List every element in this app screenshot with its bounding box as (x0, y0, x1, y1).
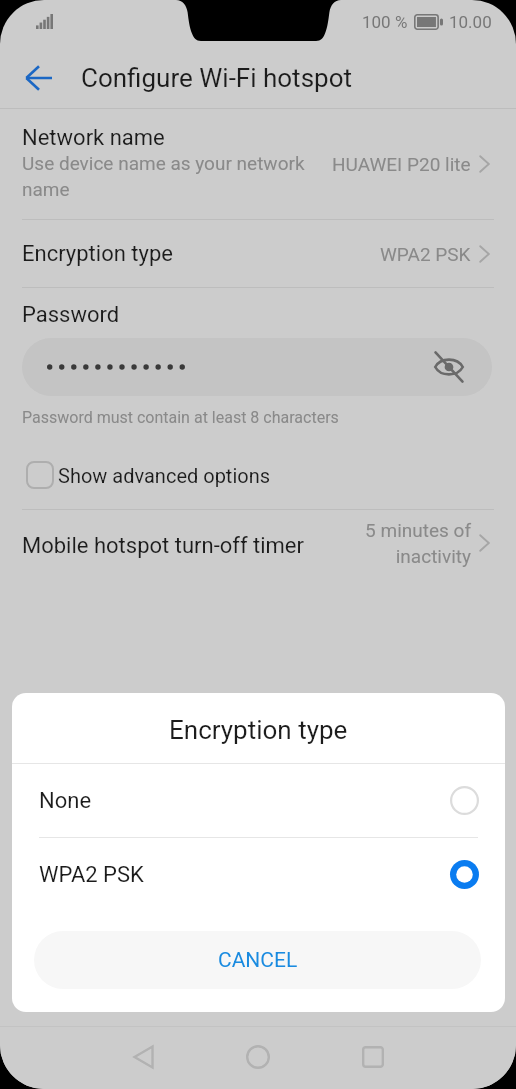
staticText: None (39, 788, 92, 814)
staticText: Show advanced options (58, 464, 271, 487)
button[interactable]: Home (228, 1027, 288, 1087)
staticText: Mobile hotspot turn-off timer (22, 533, 304, 559)
staticText: Use device name as your network name (22, 152, 318, 200)
button[interactable]: Back (113, 1027, 173, 1087)
button[interactable]: Encryption type (0, 220, 516, 287)
staticText: Configure Wi-Fi hotspot (81, 63, 352, 93)
staticText: Password (22, 302, 120, 328)
button[interactable]: Back (9, 48, 69, 108)
staticText: Encryption type (169, 715, 348, 745)
staticText: 10.00 (449, 12, 492, 32)
staticText: 5 minutes of inactivity (351, 519, 471, 567)
button[interactable]: WPA2 PSK (12, 838, 505, 911)
staticText: Password must contain at least 8 charact… (22, 408, 339, 427)
button[interactable]: Mobile hotspot turn-off timer (0, 510, 516, 590)
button[interactable]: CANCEL (34, 931, 481, 989)
button[interactable]: Show advanced options (26, 461, 271, 489)
staticText: HUAWEI P20 lite (332, 153, 471, 175)
button[interactable]: Network name (0, 109, 516, 219)
staticText: CANCEL (218, 948, 298, 973)
staticText: Network name (22, 125, 165, 151)
button[interactable]: None (12, 764, 505, 837)
button[interactable]: Recents (343, 1027, 403, 1087)
staticText: Encryption type (22, 241, 173, 267)
staticText: WPA2 PSK (380, 243, 471, 265)
staticText: WPA2 PSK (39, 862, 144, 888)
staticText: 100 % (362, 12, 408, 32)
button[interactable]: Show password (427, 345, 471, 389)
